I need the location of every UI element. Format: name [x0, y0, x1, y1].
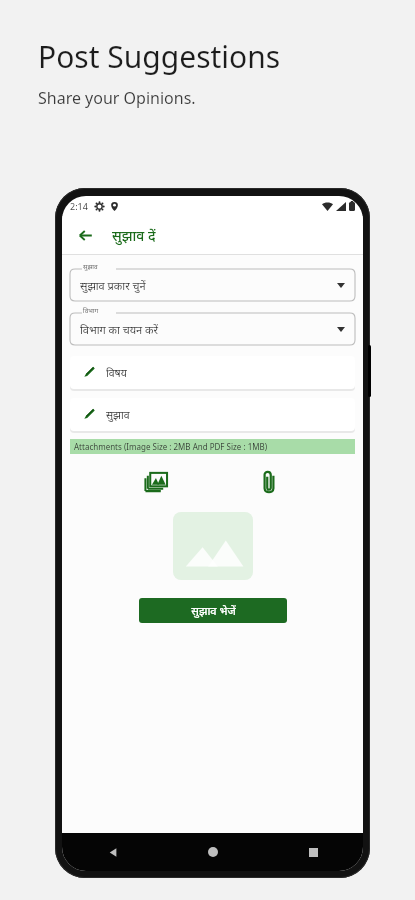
staticText: Share your Opinions.: [38, 87, 196, 109]
button[interactable]: Add image: [140, 466, 172, 498]
button[interactable]: Attach file: [253, 466, 285, 498]
button[interactable]: सुझाव: [70, 263, 355, 301]
staticText: सुझाव: [83, 262, 98, 271]
button[interactable]: विषय: [70, 356, 355, 389]
staticText: सुझाव: [106, 408, 130, 422]
staticText: Attachments (Image Size : 2MB And PDF Si…: [74, 441, 268, 452]
staticText: सुझाव भेजें: [191, 603, 236, 618]
button[interactable]: Back: [62, 833, 163, 871]
staticText: सुझाव प्रकार चुनें: [80, 278, 146, 293]
button[interactable]: Recents: [263, 833, 363, 871]
button[interactable]: सुझाव भेजें: [139, 598, 287, 623]
staticText: विभाग: [83, 306, 99, 315]
staticText: विभाग का चयन करें: [80, 322, 159, 337]
staticText: सुझाव दें: [112, 226, 156, 245]
button[interactable]: विभाग: [70, 307, 355, 345]
staticText: 2:14: [70, 200, 88, 212]
button[interactable]: Back: [72, 222, 98, 248]
staticText: विषय: [106, 366, 127, 380]
button[interactable]: Home: [163, 833, 263, 871]
button[interactable]: सुझाव: [70, 398, 355, 431]
staticText: Post Suggestions: [38, 36, 281, 77]
